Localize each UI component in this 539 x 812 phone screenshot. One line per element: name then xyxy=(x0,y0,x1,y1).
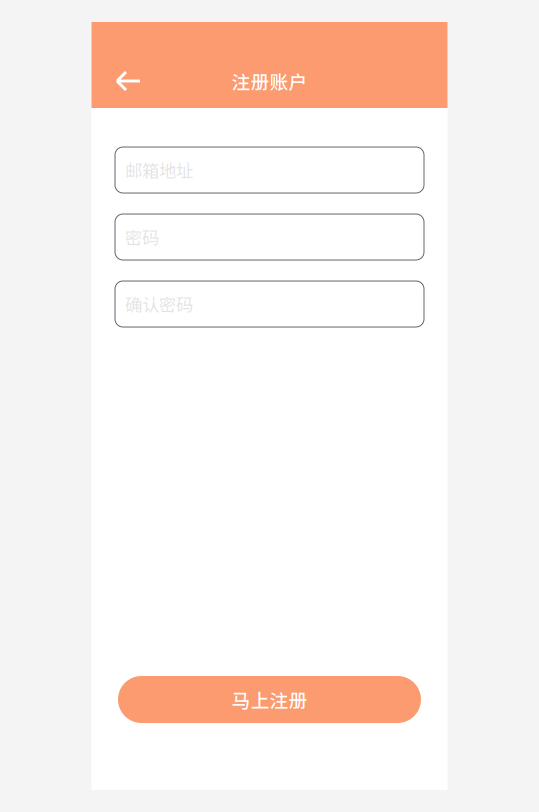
button[interactable]: 密码 xyxy=(115,214,424,260)
staticText: 注册账户 xyxy=(231,67,307,94)
button[interactable]: 确认密码 xyxy=(115,281,424,327)
staticText: 确认密码 xyxy=(125,291,193,317)
button[interactable]: 邮箱地址 xyxy=(115,147,424,193)
button[interactable]: Back xyxy=(106,59,150,103)
button[interactable]: 马上注册 xyxy=(115,676,424,723)
staticText: 密码 xyxy=(125,224,159,250)
staticText: 马上注册 xyxy=(231,686,307,713)
staticText: 邮箱地址 xyxy=(125,157,193,183)
